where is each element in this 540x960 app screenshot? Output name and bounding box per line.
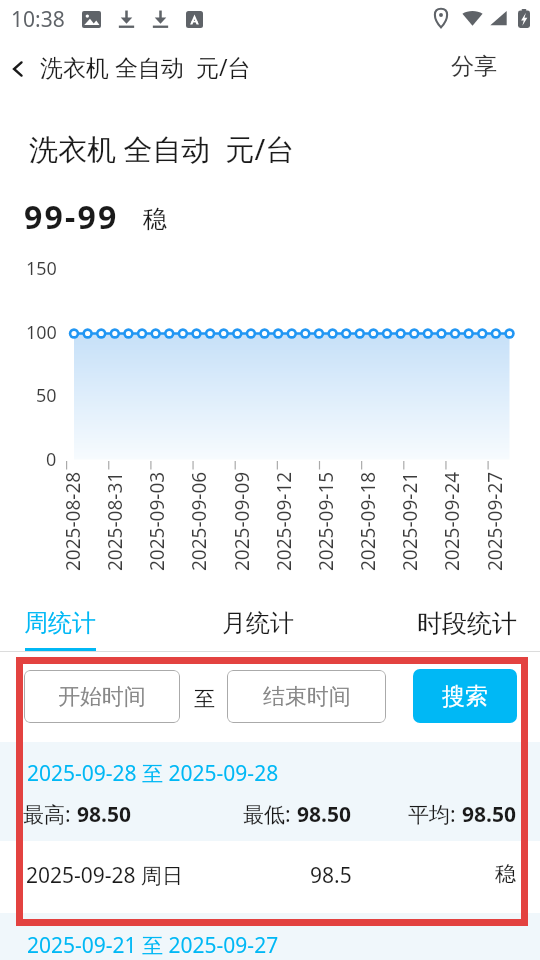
staticText: 0	[46, 447, 57, 472]
staticText: 2025-09-28 周日	[26, 861, 184, 890]
staticText: 时段统计	[417, 608, 517, 639]
staticText: 2025-08-28	[60, 471, 86, 571]
staticText: 2025-09-03	[144, 471, 170, 571]
button[interactable]: 分享	[429, 40, 519, 90]
staticText: 分享	[451, 52, 497, 78]
staticText: 2025-09-28 至 2025-09-28	[27, 759, 279, 788]
staticText: 搜索	[442, 682, 488, 711]
staticText: 至	[194, 686, 215, 712]
staticText: 2025-09-24	[439, 471, 465, 571]
staticText: 100	[26, 320, 57, 345]
staticText: 2025-09-21	[397, 471, 423, 571]
button[interactable]: 搜索	[413, 669, 517, 723]
staticText: 150	[26, 256, 57, 281]
staticText: 10:38	[11, 5, 65, 34]
staticText: 最低:	[243, 800, 297, 829]
staticText: 2025-09-18	[355, 471, 381, 571]
staticText: 洗衣机 全自动 元/台	[40, 51, 251, 82]
staticText: 2025-09-15	[313, 471, 339, 571]
staticText: 2025-09-27	[482, 471, 508, 571]
staticText: 平均:	[408, 800, 462, 829]
button[interactable]: 时段统计	[392, 599, 540, 647]
staticText: 2025-09-09	[229, 471, 255, 571]
button[interactable]: 结束时间	[227, 670, 386, 723]
staticText: 结束时间	[263, 683, 351, 711]
staticText: 月统计	[222, 608, 294, 638]
button[interactable]: Back	[0, 51, 36, 87]
staticText: 周统计	[24, 608, 96, 638]
staticText: 稳	[495, 861, 516, 887]
staticText: 99-99	[24, 195, 119, 239]
button[interactable]: 月统计	[183, 599, 333, 647]
staticText: 98.50	[77, 800, 131, 829]
staticText: 稳	[143, 204, 167, 234]
staticText: 最高:	[23, 800, 77, 829]
staticText: 50	[36, 383, 57, 408]
staticText: 2025-09-06	[186, 471, 212, 571]
button[interactable]: 2025-09-28 周日	[0, 841, 540, 913]
button[interactable]: 周统计	[0, 599, 135, 647]
staticText: 98.5	[310, 861, 352, 890]
staticText: 开始时间	[58, 683, 146, 711]
button[interactable]: 开始时间	[24, 670, 180, 723]
staticText: 98.50	[462, 800, 516, 829]
staticText: 洗衣机 全自动 元/台	[29, 129, 295, 169]
staticText: 2025-09-12	[271, 471, 297, 571]
staticText: 98.50	[297, 800, 351, 829]
staticText: 2025-09-21 至 2025-09-27	[27, 931, 279, 960]
staticText: 2025-08-31	[102, 471, 128, 571]
